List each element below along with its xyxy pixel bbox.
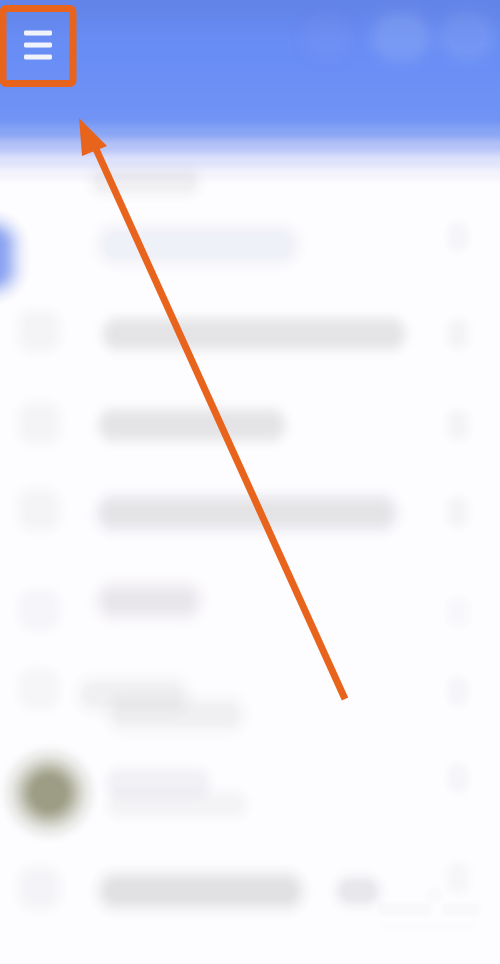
button[interactable]: Menu xyxy=(3,7,73,83)
